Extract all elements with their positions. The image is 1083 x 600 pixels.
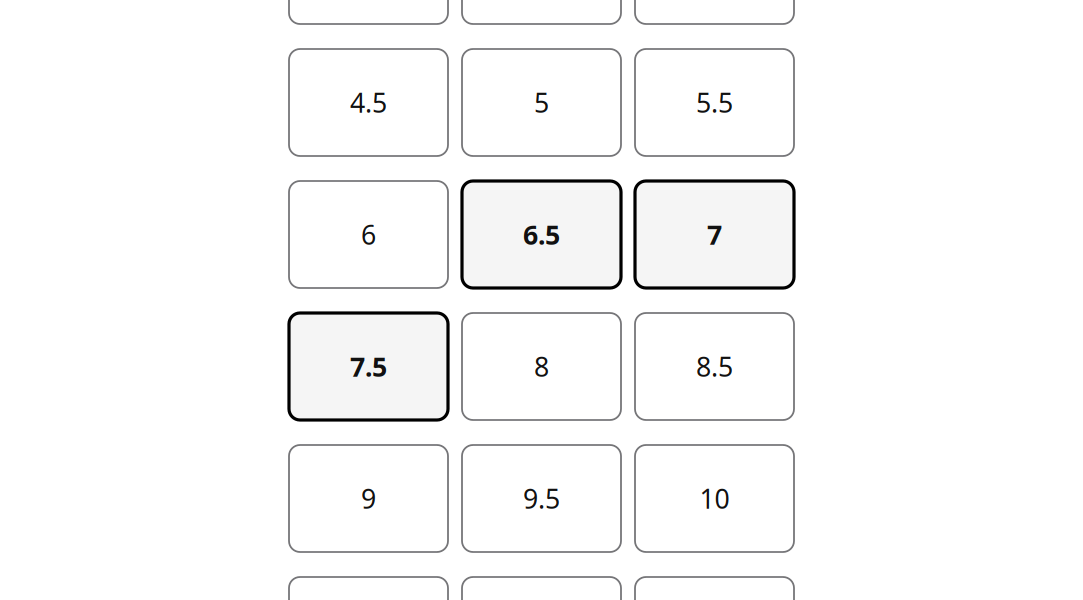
staticText: 5.5 <box>696 85 733 120</box>
button[interactable]: 11 <box>462 577 621 600</box>
button[interactable]: 3 <box>289 0 448 24</box>
staticText: 10 <box>699 481 729 516</box>
button[interactable]: 4 <box>635 0 794 24</box>
button[interactable]: 8.5 <box>635 313 794 420</box>
button[interactable]: 7.5 <box>289 313 448 420</box>
staticText: 7 <box>707 217 722 252</box>
staticText: 4.5 <box>350 85 387 120</box>
button[interactable]: 4.5 <box>289 49 448 156</box>
button[interactable]: 6 <box>289 181 448 288</box>
staticText: 7.5 <box>350 349 387 384</box>
staticText: 9 <box>361 481 376 516</box>
staticText: 9.5 <box>523 481 560 516</box>
button[interactable]: 7 <box>635 181 794 288</box>
staticText: 6.5 <box>523 217 560 252</box>
button[interactable]: 8 <box>462 313 621 420</box>
staticText: 6 <box>361 217 376 252</box>
staticText: 5 <box>534 85 549 120</box>
button[interactable]: 11.5 <box>635 577 794 600</box>
staticText: 8.5 <box>696 349 733 384</box>
button[interactable]: 9 <box>289 445 448 552</box>
button[interactable]: 6.5 <box>462 181 621 288</box>
button[interactable]: 9.5 <box>462 445 621 552</box>
button[interactable]: 5 <box>462 49 621 156</box>
staticText: 8 <box>534 349 549 384</box>
button[interactable]: 10.5 <box>289 577 448 600</box>
button[interactable]: 5.5 <box>635 49 794 156</box>
button[interactable]: 3.5 <box>462 0 621 24</box>
button[interactable]: 10 <box>635 445 794 552</box>
